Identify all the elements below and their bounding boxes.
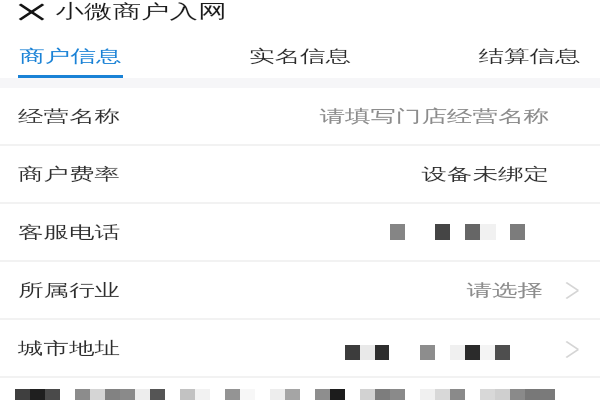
staticText: 商户信息 — [19, 46, 121, 67]
staticText: 商户费率 — [18, 164, 120, 185]
staticText: 客服电话 — [18, 222, 120, 243]
staticText: 经营名称 — [18, 106, 120, 127]
staticText: 请填写门店经营名称 — [319, 106, 549, 127]
staticText: 请选择 — [466, 280, 543, 301]
staticText: 城市地址 — [18, 338, 120, 359]
button[interactable]: 经营名称 — [0, 88, 600, 146]
button[interactable]: 城市地址 — [0, 320, 600, 378]
button[interactable]: 商户信息 — [18, 30, 123, 78]
button[interactable]: Close — [12, 0, 51, 24]
button[interactable]: 实名信息 — [247, 30, 352, 78]
staticText: 所属行业 — [18, 280, 120, 301]
button[interactable]: 结算信息 — [477, 30, 582, 78]
staticText: 小微商户入网 — [55, 0, 226, 24]
staticText: 设备未绑定 — [421, 164, 549, 185]
staticText: 实名信息 — [249, 46, 351, 67]
button[interactable]: 客服电话 — [0, 204, 600, 262]
button[interactable]: 所属行业 — [0, 262, 600, 320]
staticText: 结算信息 — [478, 46, 580, 67]
button[interactable]: 商户费率 — [0, 146, 600, 204]
